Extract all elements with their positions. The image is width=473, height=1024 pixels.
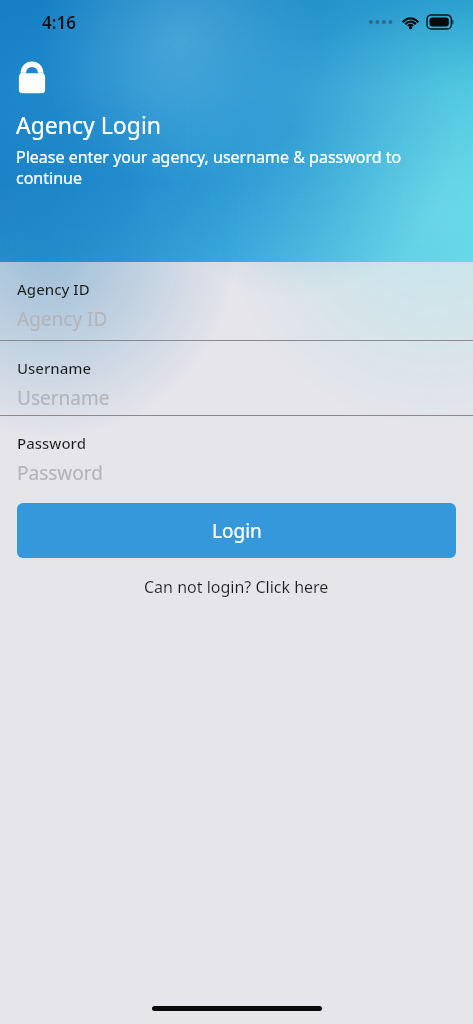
button[interactable]: Login	[17, 503, 456, 558]
staticText: Login	[212, 518, 262, 544]
staticText: Username	[17, 358, 92, 378]
staticText: Can not login? Click here	[144, 576, 329, 598]
button[interactable]: Can not login? Click here	[0, 572, 473, 602]
staticText: Password	[17, 433, 86, 453]
staticText: Username	[17, 385, 110, 411]
staticText: Agency ID	[17, 279, 90, 299]
staticText: Password	[17, 460, 103, 486]
button[interactable]: Username	[0, 341, 473, 416]
staticText: 4:16	[42, 11, 76, 34]
staticText: Please enter your agency, username & pas…	[16, 146, 426, 189]
button[interactable]: Agency ID	[0, 262, 473, 341]
button[interactable]: Password	[0, 416, 473, 491]
other: Secure login	[16, 58, 48, 96]
staticText: Agency ID	[17, 306, 108, 332]
staticText: Agency Login	[16, 109, 162, 140]
